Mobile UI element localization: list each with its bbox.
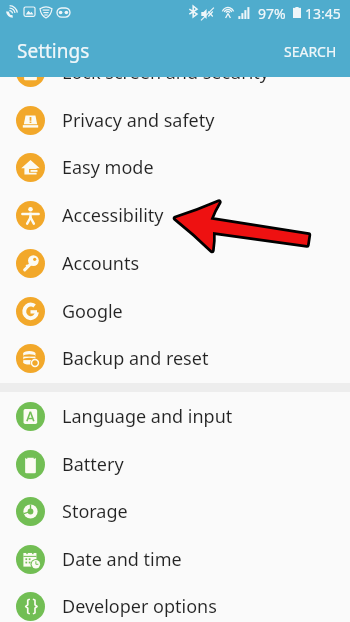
staticText: Developer options xyxy=(62,594,217,619)
staticText: Storage xyxy=(62,499,128,524)
staticText: Lock screen and security xyxy=(62,60,269,85)
staticText: Accessibility xyxy=(62,203,164,228)
button[interactable]: Accessibility xyxy=(0,191,350,239)
staticText: 97% xyxy=(258,4,286,23)
staticText: Battery xyxy=(62,452,124,477)
button[interactable]: Easy mode xyxy=(0,143,350,191)
button[interactable]: Storage xyxy=(0,487,350,535)
button[interactable]: Language and input xyxy=(0,392,350,440)
button[interactable]: Backup and reset xyxy=(0,334,350,382)
staticText: 13:45 xyxy=(305,4,341,23)
staticText: Date and time xyxy=(62,547,182,572)
staticText: Language and input xyxy=(62,404,233,429)
button[interactable]: Lock screen and security xyxy=(0,48,350,96)
staticText: Google xyxy=(62,299,123,324)
staticText: Settings xyxy=(17,38,90,64)
staticText: Privacy and safety xyxy=(62,108,215,133)
staticText: Accounts xyxy=(62,251,140,276)
button[interactable]: SEARCH xyxy=(272,34,349,69)
staticText: Backup and reset xyxy=(62,346,209,371)
button[interactable]: Accounts xyxy=(0,239,350,287)
staticText: SEARCH xyxy=(284,42,337,61)
staticText: Easy mode xyxy=(62,155,154,180)
button[interactable]: Google xyxy=(0,287,350,335)
button[interactable]: Date and time xyxy=(0,535,350,583)
button[interactable]: Developer options xyxy=(0,582,350,622)
button[interactable]: Privacy and safety xyxy=(0,96,350,144)
button[interactable]: Battery xyxy=(0,440,350,488)
